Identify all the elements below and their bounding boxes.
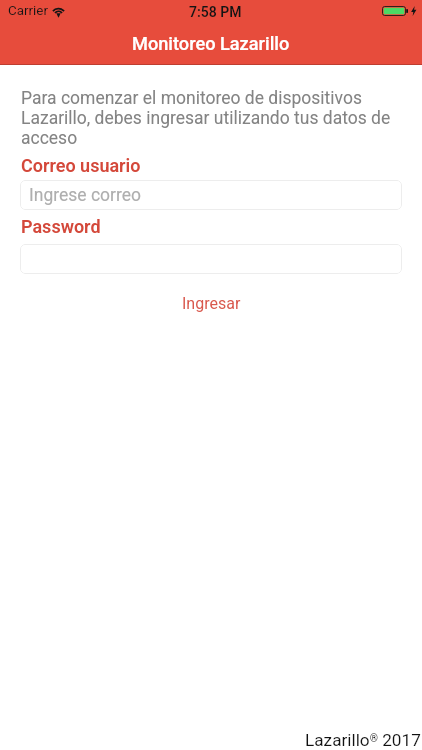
- staticText: Lazarillo® 2017: [305, 730, 421, 750]
- button[interactable]: Ingresar: [0, 289, 422, 317]
- staticText: Password: [21, 216, 101, 237]
- staticText: Carrier: [8, 3, 48, 19]
- staticText: Correo usuario: [21, 155, 141, 176]
- button[interactable]: [20, 244, 402, 274]
- other: Wi-Fi signal: [51, 6, 66, 17]
- staticText: Para comenzar el monitoreo de dispositiv…: [21, 88, 406, 148]
- staticText: 7:58 PM: [189, 4, 242, 20]
- staticText: Monitoreo Lazarillo: [132, 33, 290, 54]
- other: Battery charging: [382, 6, 416, 16]
- button[interactable]: Ingrese correo: [20, 180, 402, 210]
- staticText: Ingrese correo: [29, 185, 142, 206]
- staticText: Ingresar: [182, 294, 241, 313]
